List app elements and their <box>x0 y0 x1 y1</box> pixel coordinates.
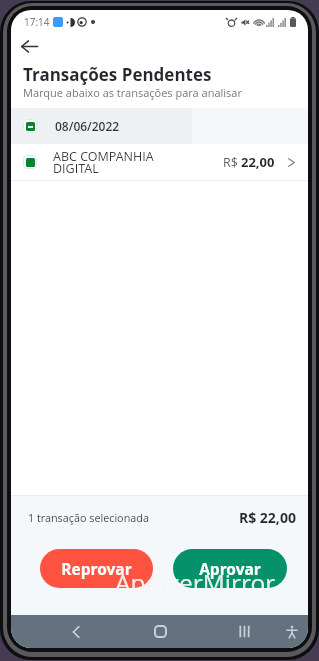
staticText: Aprovar <box>199 558 261 579</box>
button[interactable]: ABC COMPANHIA DIGITAL <box>23 144 295 180</box>
staticText: 1 transação selecionada <box>28 510 149 525</box>
staticText: Reprovar <box>61 558 132 579</box>
staticText: 17:14 <box>24 15 50 29</box>
staticText: ABC COMPANHIA DIGITAL <box>53 148 154 177</box>
button[interactable]: Recent apps <box>224 615 264 648</box>
staticText: 22,00 <box>241 153 275 171</box>
staticText: R$ 22,00 <box>239 508 296 527</box>
staticText: Transações Pendentes <box>23 63 212 86</box>
button[interactable]: Back <box>56 615 96 648</box>
button[interactable]: Back <box>21 33 308 59</box>
button[interactable]: Home <box>140 615 180 648</box>
button[interactable]: Aprovar <box>173 549 287 588</box>
staticText: 08/06/2022 <box>55 118 120 134</box>
staticText: R$ <box>223 154 238 171</box>
button[interactable]: 08/06/2022 <box>23 108 308 144</box>
button[interactable]: Reprovar <box>40 549 153 588</box>
staticText: Marque abaixo as transações para analisa… <box>23 85 242 100</box>
staticText: ApowerMirror <box>115 566 276 599</box>
button[interactable]: Accessibility <box>272 615 308 648</box>
